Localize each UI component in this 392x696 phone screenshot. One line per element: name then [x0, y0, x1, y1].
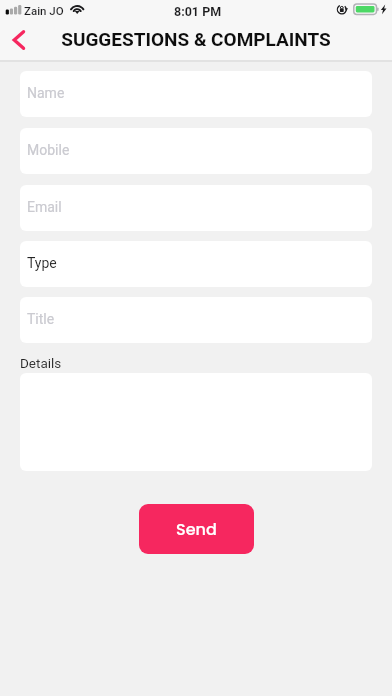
button[interactable]: Email	[20, 185, 372, 231]
button[interactable]: Back	[0, 20, 39, 60]
staticText: SUGGESTIONS & COMPLAINTS	[61, 28, 331, 50]
staticText: Type	[27, 255, 57, 271]
staticText: Details	[20, 355, 62, 371]
staticText: Name	[27, 85, 65, 101]
button[interactable]: Name	[20, 71, 372, 117]
staticText: Send	[176, 518, 217, 540]
button[interactable]: Title	[20, 297, 372, 343]
button[interactable]: Mobile	[20, 128, 372, 174]
staticText: Mobile	[27, 142, 70, 158]
staticText: 8:01 PM	[174, 4, 222, 19]
staticText: Email	[27, 199, 62, 215]
staticText: Zain JO	[24, 4, 64, 17]
button[interactable]: Type	[20, 241, 372, 287]
staticText: Title	[27, 311, 55, 327]
button[interactable]: Send	[139, 504, 254, 554]
